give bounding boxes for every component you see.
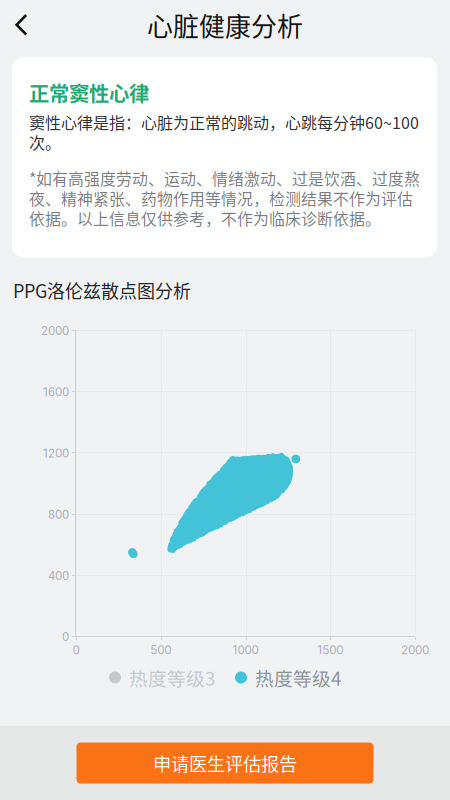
staticText: 2000 bbox=[41, 324, 69, 338]
staticText: 1500 bbox=[317, 643, 343, 657]
staticText: 0 bbox=[62, 630, 69, 644]
staticText: 800 bbox=[48, 508, 69, 521]
staticText: 1600 bbox=[43, 385, 69, 399]
button[interactable]: 申请医生评估报告 bbox=[76, 742, 373, 783]
staticText: 正常窦性心律 bbox=[29, 78, 149, 107]
staticText: 心脏健康分析 bbox=[147, 6, 303, 44]
staticText: 申请医生评估报告 bbox=[153, 750, 297, 776]
button[interactable]: Back bbox=[0, 0, 44, 49]
staticText: *如有高强度劳动、运动、情绪激动、过是饮酒、过度熬夜、精神紧张、药物作用等情况，… bbox=[29, 167, 420, 230]
staticText: 窦性心律是指：心脏为正常的跳动，心跳每分钟60~100次。 bbox=[29, 110, 419, 154]
staticText: 1000 bbox=[232, 643, 258, 657]
staticText: 2000 bbox=[401, 643, 429, 657]
staticText: 0 bbox=[72, 643, 79, 657]
staticText: PPG洛伦兹散点图分析 bbox=[13, 277, 191, 303]
staticText: 1200 bbox=[43, 446, 69, 460]
staticText: 400 bbox=[48, 569, 69, 583]
staticText: 热度等级3 bbox=[129, 664, 215, 691]
staticText: 500 bbox=[150, 643, 171, 657]
staticText: 热度等级4 bbox=[255, 664, 341, 691]
